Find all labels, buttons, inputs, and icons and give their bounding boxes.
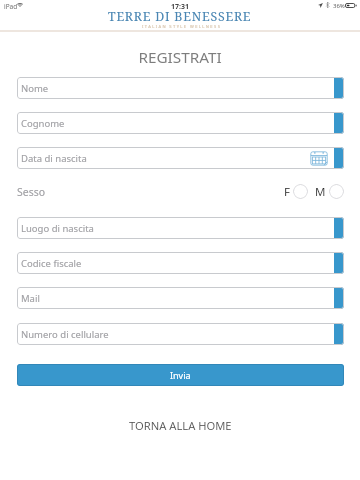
button[interactable]: Numero di cellulare: [17, 323, 344, 345]
staticText: Data di nascita: [21, 152, 87, 165]
staticText: iPad: [4, 2, 18, 11]
staticText: REGISTRATI: [138, 47, 222, 68]
button[interactable]: Femmina: [293, 184, 308, 199]
staticText: Codice fiscale: [21, 257, 82, 270]
button[interactable]: Data di nascita: [17, 147, 344, 169]
button[interactable]: TORNA ALLA HOME: [123, 416, 238, 435]
button[interactable]: Luogo di nascita: [17, 217, 344, 239]
staticText: Luogo di nascita: [21, 222, 94, 235]
button[interactable]: Codice fiscale: [17, 252, 344, 274]
button[interactable]: Maschio: [329, 184, 344, 199]
staticText: 36%: [333, 2, 345, 10]
staticText: F: [284, 184, 290, 199]
staticText: Mail: [21, 292, 40, 305]
staticText: Nome: [21, 82, 49, 95]
button[interactable]: Mail: [17, 287, 344, 309]
staticText: Numero di cellulare: [21, 328, 109, 341]
staticText: M: [315, 184, 326, 199]
staticText: 17:31: [171, 2, 189, 12]
staticText: Sesso: [17, 185, 46, 199]
button[interactable]: Invia: [17, 364, 344, 386]
staticText: Cognome: [21, 117, 65, 130]
staticText: TERRE DI BENESSERE: [108, 8, 252, 25]
button[interactable]: Nome: [17, 77, 344, 99]
button[interactable]: Cognome: [17, 112, 344, 134]
staticText: ITALIAN STYLE WELLNESS: [142, 24, 222, 30]
staticText: Invia: [170, 369, 191, 381]
